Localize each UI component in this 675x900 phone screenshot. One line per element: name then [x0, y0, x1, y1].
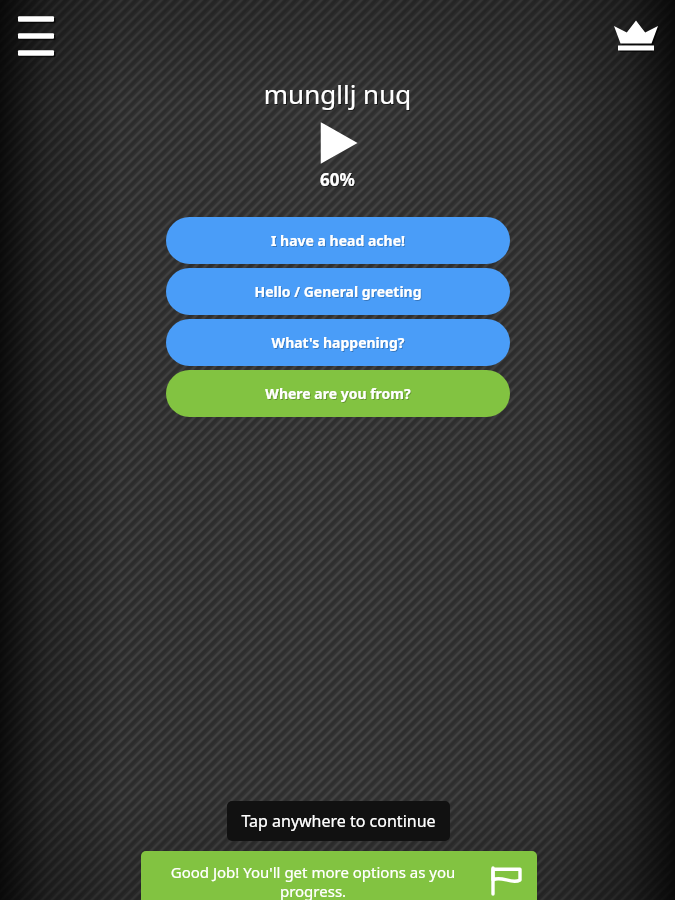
staticText: Tap anywhere to continue [241, 810, 436, 832]
button[interactable]: Tap anywhere to continue [227, 801, 450, 841]
button[interactable]: Report [475, 851, 537, 900]
staticText: I have a head ache! [167, 232, 510, 251]
button[interactable]: Premium [610, 12, 662, 60]
button[interactable]: Good Job! You'll get more options as you… [141, 851, 537, 900]
staticText: Where are you from? [166, 384, 510, 403]
button[interactable]: Play audio [307, 120, 369, 166]
button[interactable]: Where are you from? [166, 370, 510, 417]
staticText: 60% [0, 168, 675, 191]
button[interactable]: Hello / General greeting [166, 268, 510, 315]
button[interactable]: What's happening? [166, 319, 510, 366]
staticText: mungllj nuq [0, 76, 675, 111]
staticText: mungllj nuq [1, 77, 675, 112]
staticText: What's happening? [166, 333, 510, 352]
staticText: Good Job! You'll get more options as you… [155, 862, 471, 900]
staticText: Where are you from? [167, 385, 510, 404]
staticText: What's happening? [167, 334, 510, 353]
button[interactable]: Menu [12, 14, 60, 58]
staticText: Hello / General greeting [167, 283, 510, 302]
staticText: 60% [1, 169, 675, 192]
staticText: I have a head ache! [166, 231, 510, 250]
button[interactable]: I have a head ache! [166, 217, 510, 264]
staticText: Hello / General greeting [166, 282, 510, 301]
